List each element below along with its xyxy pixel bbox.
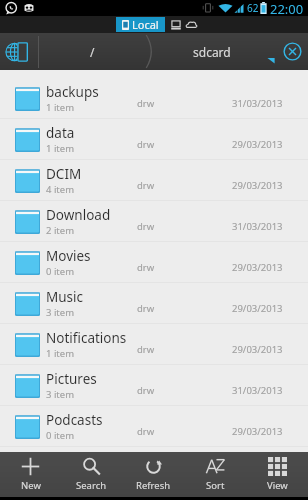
button[interactable]: New — [0, 452, 61, 497]
button[interactable]: Movies — [0, 242, 308, 283]
staticText: 29/03/2013 — [232, 138, 283, 151]
staticText: drw — [137, 384, 155, 397]
staticText: Search — [76, 479, 107, 492]
staticText: DCIM — [46, 165, 82, 183]
button[interactable]: Pictures — [0, 365, 308, 406]
staticText: drw — [137, 302, 155, 315]
button[interactable]: DCIM — [0, 160, 308, 201]
staticText: drw — [137, 261, 155, 274]
staticText: Movies — [46, 247, 91, 265]
staticText: 0 item — [46, 429, 75, 442]
button[interactable]: Notifications — [0, 324, 308, 365]
staticText: 29/03/2013 — [232, 261, 283, 274]
button[interactable]: Sort — [184, 452, 246, 497]
staticText: drw — [137, 220, 155, 233]
button[interactable]: Computer — [170, 19, 182, 31]
button[interactable]: / — [39, 33, 145, 70]
staticText: drw — [137, 179, 155, 192]
staticText: drw — [137, 425, 155, 438]
staticText: 1 item — [46, 101, 75, 114]
staticText: 4 item — [46, 183, 75, 196]
staticText: backups — [46, 83, 99, 101]
button[interactable]: View — [246, 452, 308, 497]
staticText: drw — [137, 97, 155, 110]
staticText: Pictures — [46, 370, 97, 388]
button[interactable]: Download — [0, 201, 308, 242]
button[interactable]: Search — [61, 452, 122, 497]
button[interactable]: Browse — [0, 33, 38, 70]
button[interactable]: Cloud — [185, 18, 198, 31]
staticText: 62 — [247, 1, 259, 15]
button[interactable]: sdcard — [157, 33, 267, 70]
staticText: New — [21, 479, 41, 492]
staticText: / — [90, 44, 95, 60]
staticText: 1 item — [46, 347, 75, 360]
staticText: 31/03/2013 — [232, 220, 283, 233]
staticText: Sort — [206, 479, 225, 492]
staticText: 0 item — [46, 265, 75, 278]
staticText: 31/03/2013 — [232, 384, 283, 397]
button[interactable]: Close — [276, 33, 308, 70]
staticText: 1 item — [46, 142, 75, 155]
staticText: 29/03/2013 — [232, 425, 283, 438]
button[interactable]: backups — [0, 78, 308, 119]
staticText: 2 item — [46, 224, 75, 237]
staticText: Notifications — [46, 329, 127, 347]
staticText: drw — [137, 343, 155, 356]
staticText: 31/03/2013 — [232, 97, 283, 110]
button[interactable]: Podcasts — [0, 406, 308, 447]
button[interactable]: data — [0, 119, 308, 160]
staticText: 29/03/2013 — [232, 302, 283, 315]
staticText: 22:00 — [270, 0, 304, 16]
staticText: sdcard — [193, 44, 231, 60]
staticText: 29/03/2013 — [232, 343, 283, 356]
button[interactable]: Refresh — [122, 452, 184, 497]
staticText: View — [267, 479, 288, 492]
staticText: 3 item — [46, 306, 75, 319]
button[interactable]: Music — [0, 283, 308, 324]
staticText: Local — [132, 17, 159, 32]
staticText: Download — [46, 206, 111, 224]
button[interactable]: Local — [116, 17, 165, 32]
staticText: 3 item — [46, 388, 75, 401]
staticText: drw — [137, 138, 155, 151]
staticText: Music — [46, 288, 84, 306]
staticText: Refresh — [136, 479, 171, 492]
staticText: 29/03/2013 — [232, 179, 283, 192]
staticText: data — [46, 124, 75, 142]
staticText: Podcasts — [46, 411, 103, 429]
